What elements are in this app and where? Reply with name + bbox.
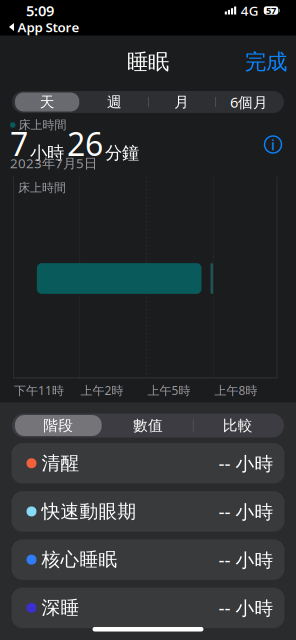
staticText: 數值 bbox=[133, 416, 163, 434]
staticText: 床上時間 bbox=[18, 180, 66, 195]
staticText: 26 bbox=[67, 122, 103, 165]
staticText: 快速動眼期 bbox=[41, 500, 136, 523]
button[interactable]: 階段 bbox=[13, 415, 103, 436]
button[interactable]: 核心睡眠 bbox=[11, 539, 284, 580]
staticText: 下午11時 bbox=[14, 382, 64, 398]
button[interactable]: 月 bbox=[148, 92, 215, 111]
button[interactable]: 6個月 bbox=[215, 92, 282, 111]
staticText: i bbox=[271, 135, 275, 154]
button[interactable]: 深睡 bbox=[11, 588, 284, 628]
staticText: -- 小時 bbox=[218, 499, 273, 524]
staticText: 小時 bbox=[30, 142, 64, 164]
button[interactable]: 完成 bbox=[236, 38, 296, 86]
button[interactable]: 快速動眼期 bbox=[11, 491, 284, 532]
staticText: 清醒 bbox=[41, 452, 79, 475]
staticText: App Store bbox=[17, 18, 79, 36]
staticText: 7 bbox=[10, 122, 28, 165]
staticText: 5:09 bbox=[26, 1, 54, 20]
staticText: 完成 bbox=[245, 49, 287, 75]
staticText: 57 bbox=[266, 4, 276, 17]
staticText: 床上時間 bbox=[18, 118, 66, 132]
staticText: 深睡 bbox=[41, 596, 79, 619]
staticText: 分鐘 bbox=[105, 142, 139, 164]
staticText: 階段 bbox=[43, 416, 73, 434]
button[interactable]: 週 bbox=[81, 92, 148, 111]
staticText: 週 bbox=[107, 93, 122, 111]
staticText: 2023年7月5日 bbox=[10, 154, 97, 172]
staticText: 核心睡眠 bbox=[41, 548, 117, 571]
staticText: 月 bbox=[174, 93, 189, 111]
staticText: 4G bbox=[241, 2, 259, 19]
button[interactable]: 天 bbox=[13, 92, 81, 111]
button[interactable]: 清醒 bbox=[11, 443, 284, 483]
staticText: 上午8時 bbox=[214, 382, 257, 398]
staticText: 睡眠 bbox=[127, 49, 169, 75]
staticText: 上午5時 bbox=[147, 382, 190, 398]
staticText: 6個月 bbox=[230, 92, 268, 112]
staticText: 比較 bbox=[223, 416, 253, 434]
staticText: -- 小時 bbox=[218, 451, 273, 476]
staticText: 天 bbox=[40, 93, 55, 111]
button[interactable]: 數值 bbox=[103, 415, 193, 436]
button[interactable]: 比較 bbox=[193, 415, 282, 436]
staticText: 上午2時 bbox=[80, 382, 123, 398]
staticText: -- 小時 bbox=[218, 547, 273, 572]
button[interactable]: About sleep data bbox=[260, 131, 286, 157]
staticText: -- 小時 bbox=[218, 595, 273, 620]
